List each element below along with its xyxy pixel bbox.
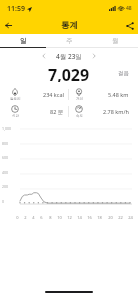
staticText: 칼로리: [10, 97, 21, 101]
staticText: 200: [2, 184, 9, 189]
staticText: 6: [40, 215, 43, 220]
staticText: 월: [112, 37, 119, 45]
staticText: 48: [126, 5, 132, 12]
staticText: 통계: [61, 20, 78, 31]
staticText: 1,000: [2, 126, 11, 131]
staticText: 7,029: [48, 64, 90, 82]
staticText: 주: [66, 37, 73, 45]
staticText: 82 분: [50, 108, 64, 116]
button[interactable]: Previous day: [38, 50, 50, 62]
staticText: 5.48 km: [108, 91, 129, 98]
staticText: 일: [20, 37, 27, 45]
button[interactable]: 주: [46, 34, 92, 47]
staticText: 22: [118, 215, 123, 220]
button[interactable]: 월: [92, 34, 138, 47]
staticText: 24: [128, 215, 133, 220]
staticText: 4월 23일: [56, 52, 82, 61]
staticText: 18: [97, 215, 102, 220]
staticText: 8: [49, 215, 52, 220]
staticText: 400: [2, 170, 9, 175]
staticText: 11:59: [7, 4, 25, 14]
staticText: 600: [2, 155, 9, 160]
staticText: 거리: [76, 97, 83, 101]
staticText: 12: [67, 215, 72, 220]
staticText: 2: [24, 215, 27, 220]
staticText: 20: [108, 215, 113, 220]
staticText: 2.78 km/h: [103, 108, 129, 115]
staticText: 걸음: [118, 70, 129, 77]
staticText: 14: [77, 215, 82, 220]
staticText: 속도: [76, 114, 83, 118]
button[interactable]: 속도: [69, 103, 133, 120]
staticText: 16: [87, 215, 92, 220]
staticText: 800: [2, 141, 9, 146]
staticText: 234 kcal: [43, 91, 64, 98]
staticText: 4: [32, 215, 35, 220]
button[interactable]: Next day: [88, 50, 100, 62]
button[interactable]: Back: [0, 17, 17, 34]
button[interactable]: 일: [0, 34, 46, 47]
staticText: 시간: [12, 114, 19, 118]
staticText: 0: [16, 215, 19, 220]
staticText: 0: [2, 199, 5, 204]
button[interactable]: 시간: [5, 103, 68, 120]
staticText: 10: [57, 215, 62, 220]
button[interactable]: 칼로리: [5, 86, 68, 103]
button[interactable]: 거리: [69, 86, 133, 103]
button[interactable]: Share: [121, 17, 138, 34]
